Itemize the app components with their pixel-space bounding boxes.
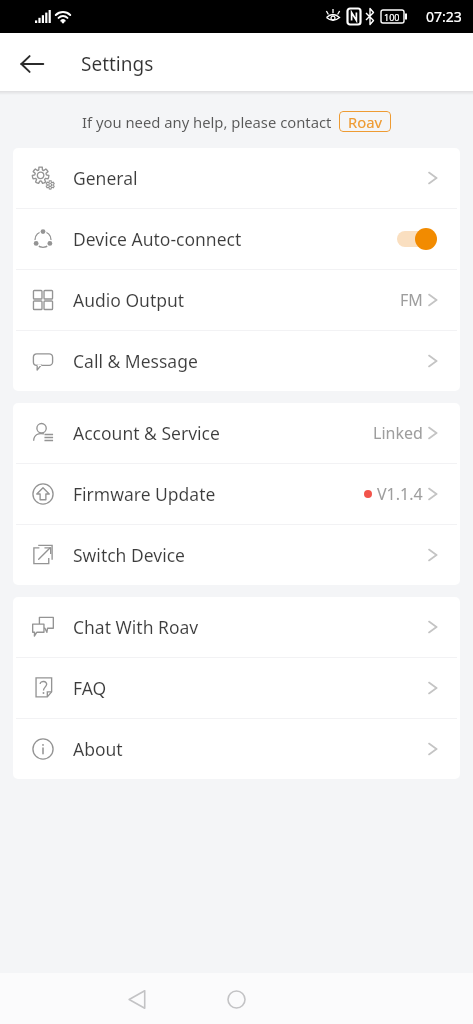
button[interactable]: Chat With Roav (13, 597, 460, 657)
staticText: Account & Service (73, 421, 220, 445)
staticText: Audio Output (73, 288, 185, 312)
staticText: Linked (373, 422, 423, 444)
staticText: Firmware Update (73, 482, 216, 506)
button[interactable]: Home (215, 978, 257, 1020)
button[interactable]: FAQ (13, 658, 460, 718)
staticText: Settings (81, 51, 154, 77)
button[interactable]: Back (9, 41, 55, 87)
staticText: 07:23 (426, 7, 462, 26)
staticText: V1.1.4 (377, 483, 423, 505)
staticText: General (73, 166, 138, 190)
button[interactable]: Call & Message (13, 331, 460, 391)
staticText: Switch Device (73, 543, 185, 567)
button[interactable]: Back (116, 978, 158, 1020)
staticText: Chat With Roav (73, 615, 199, 639)
button[interactable]: About (13, 719, 460, 779)
button[interactable]: Account & Service (13, 403, 460, 463)
button[interactable]: Device Auto-connect (13, 209, 460, 269)
staticText: FAQ (73, 676, 107, 700)
button[interactable]: Firmware Update (13, 464, 460, 524)
staticText: If you need any help, please contact (82, 112, 332, 132)
staticText: Roav (348, 112, 382, 132)
button[interactable]: Audio Output (13, 270, 460, 330)
staticText: Device Auto-connect (73, 227, 242, 251)
staticText: FM (400, 289, 423, 311)
button[interactable]: General (13, 148, 460, 208)
staticText: Call & Message (73, 349, 198, 373)
staticText: About (73, 737, 123, 761)
button[interactable]: Roav (339, 111, 391, 132)
button[interactable]: Switch Device (13, 525, 460, 585)
staticText: 100 (384, 11, 400, 23)
